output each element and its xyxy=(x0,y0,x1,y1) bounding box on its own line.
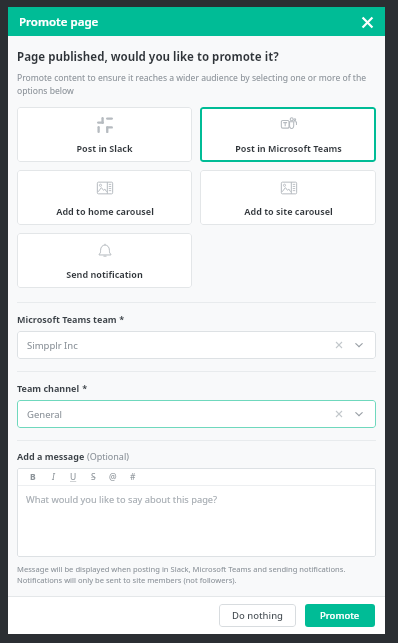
staticText: Promote content to ensure it reaches a w… xyxy=(17,72,376,96)
button[interactable]: Close xyxy=(355,10,379,34)
button[interactable]: Add to site carousel xyxy=(200,170,376,225)
staticText: General xyxy=(27,408,332,421)
staticText: Post in Slack xyxy=(76,142,133,154)
button[interactable]: Post in Slack xyxy=(17,107,192,162)
staticText: Add to home carousel xyxy=(56,205,154,217)
staticText: Send notification xyxy=(66,268,143,280)
button[interactable]: U xyxy=(63,468,83,485)
staticText: Do nothing xyxy=(232,609,283,622)
button[interactable]: I xyxy=(43,468,63,485)
button[interactable]: S xyxy=(83,468,103,485)
staticText: # xyxy=(130,471,136,483)
button[interactable]: General xyxy=(17,400,376,428)
button[interactable]: Post in Microsoft Teams xyxy=(200,107,376,162)
staticText: * xyxy=(80,382,88,394)
staticText: Promote page xyxy=(19,14,99,30)
staticText: Message will be displayed when posting i… xyxy=(17,564,346,585)
button[interactable]: # xyxy=(123,468,143,485)
staticText: B xyxy=(30,471,36,483)
button[interactable]: Clear xyxy=(332,407,346,421)
button[interactable]: Do nothing xyxy=(219,604,296,627)
staticText: Promote xyxy=(320,609,360,622)
staticText: What would you like to say about this pa… xyxy=(26,493,218,506)
staticText: (Optional) xyxy=(87,450,129,462)
button[interactable]: Clear xyxy=(332,338,346,352)
button[interactable]: B xyxy=(23,468,43,485)
staticText: Simpplr Inc xyxy=(27,339,332,352)
staticText: Post in Microsoft Teams xyxy=(235,142,342,154)
staticText: Team channel xyxy=(17,382,80,394)
button[interactable]: Add to home carousel xyxy=(17,170,192,225)
staticText: Add a message xyxy=(17,450,87,462)
staticText: * xyxy=(117,313,125,325)
staticText: @ xyxy=(109,471,117,483)
staticText: I xyxy=(52,471,55,483)
button[interactable]: Open dropdown xyxy=(352,407,366,421)
staticText: S xyxy=(91,471,96,483)
button[interactable]: Send notification xyxy=(17,233,192,288)
staticText: Add to site carousel xyxy=(244,205,333,217)
staticText: Microsoft Teams team xyxy=(17,313,117,325)
button[interactable]: Open dropdown xyxy=(352,338,366,352)
button[interactable]: @ xyxy=(103,468,123,485)
staticText: Page published, would you like to promot… xyxy=(17,49,279,65)
button[interactable]: Simpplr Inc xyxy=(17,331,376,359)
button[interactable]: Promote xyxy=(305,604,375,627)
staticText: U xyxy=(70,471,77,483)
